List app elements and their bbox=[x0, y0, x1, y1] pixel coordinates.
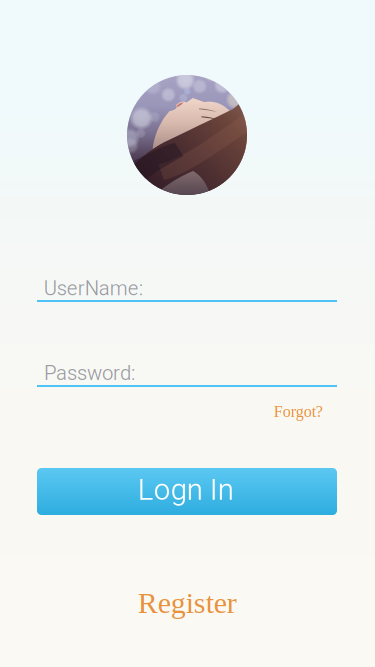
button[interactable]: Register bbox=[138, 586, 237, 620]
button[interactable]: Logn In bbox=[37, 468, 337, 515]
staticText: Logn In bbox=[138, 469, 234, 512]
staticText: Register bbox=[138, 586, 237, 620]
staticText: Forgot? bbox=[274, 403, 323, 420]
button[interactable]: Forgot? bbox=[274, 403, 323, 420]
staticText: UserName: bbox=[44, 274, 143, 304]
staticText: Password: bbox=[44, 359, 135, 389]
